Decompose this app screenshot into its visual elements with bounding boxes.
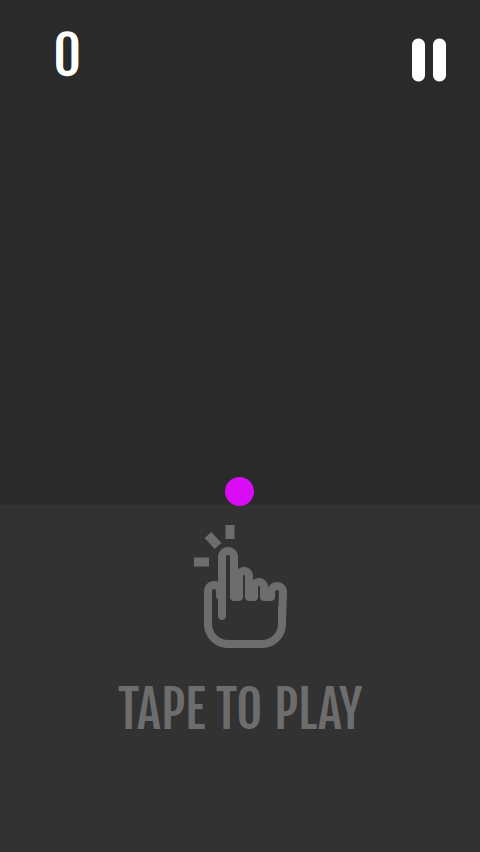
staticText: TAPE TO PLAY	[118, 678, 362, 742]
staticText: 0	[53, 21, 81, 90]
button[interactable]: Pause	[401, 32, 457, 88]
button[interactable]: Tape to play	[0, 0, 480, 852]
